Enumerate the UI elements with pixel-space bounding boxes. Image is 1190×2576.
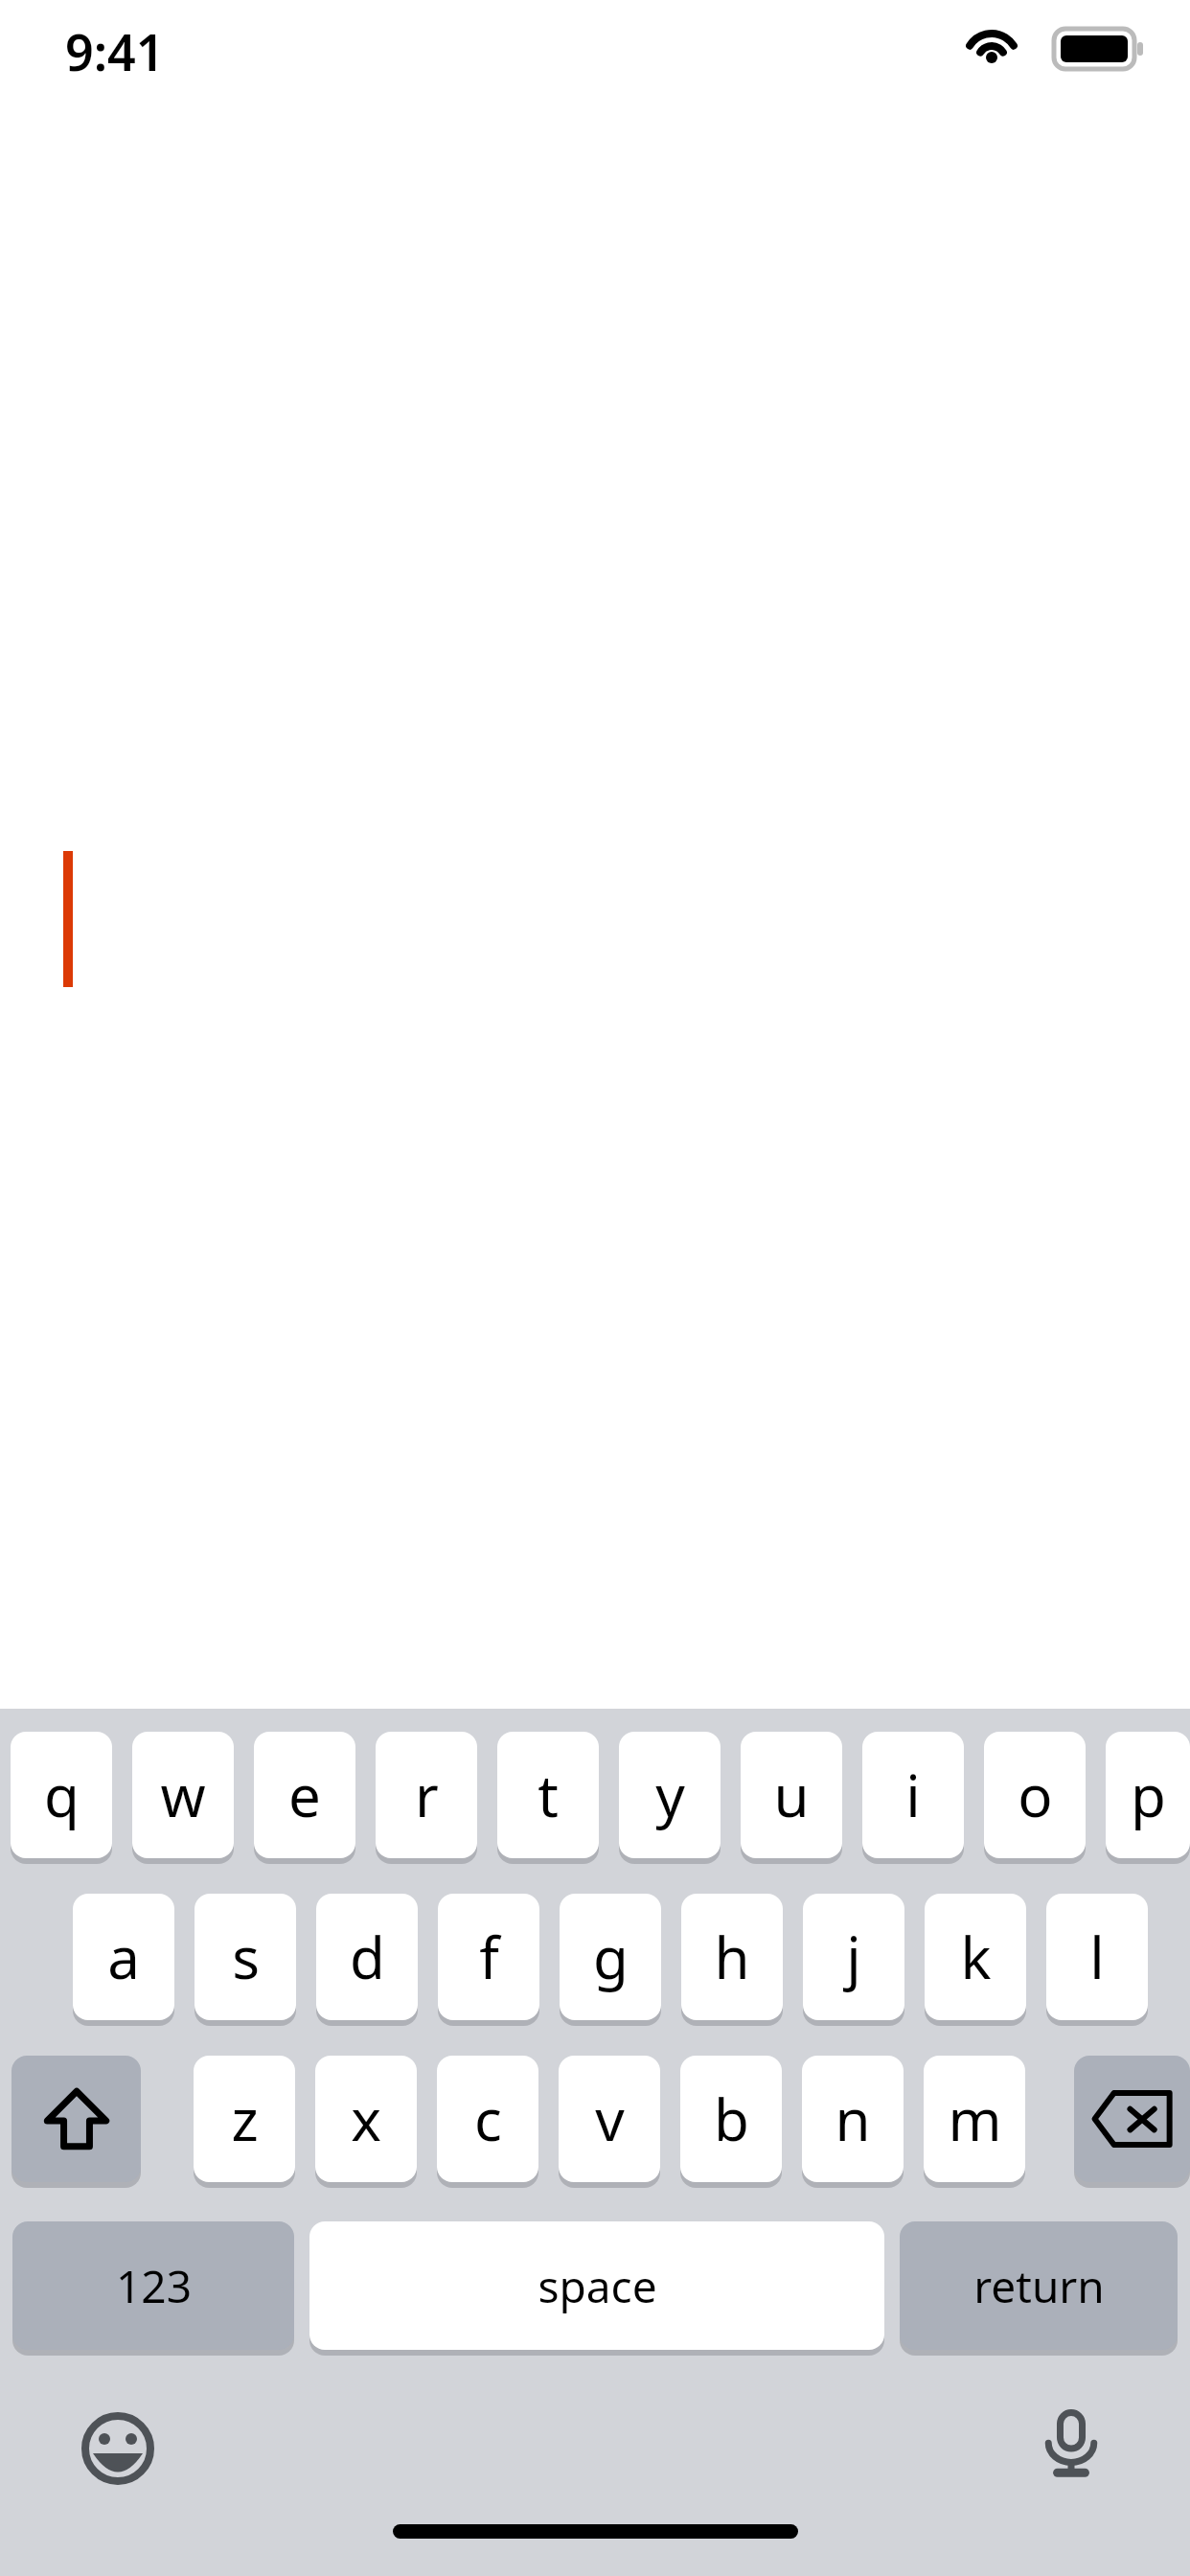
staticText: v xyxy=(595,2080,625,2158)
button[interactable]: z xyxy=(194,2056,295,2182)
staticText: h xyxy=(714,1918,750,1996)
staticText: q xyxy=(44,1756,80,1834)
button[interactable]: b xyxy=(680,2056,782,2182)
button[interactable]: k xyxy=(925,1894,1026,2020)
button[interactable]: y xyxy=(619,1732,721,1858)
button[interactable]: e xyxy=(254,1732,355,1858)
button[interactable]: a xyxy=(73,1894,174,2020)
button[interactable]: h xyxy=(681,1894,783,2020)
button[interactable]: l xyxy=(1046,1894,1148,2020)
staticText: space xyxy=(538,2256,657,2316)
button[interactable]: m xyxy=(924,2056,1025,2182)
staticText: 9:41 xyxy=(65,17,165,85)
staticText: g xyxy=(593,1918,629,1996)
staticText: o xyxy=(1018,1756,1053,1834)
staticText: c xyxy=(474,2080,502,2158)
button[interactable]: p xyxy=(1106,1732,1190,1858)
button[interactable]: f xyxy=(438,1894,539,2020)
button[interactable]: d xyxy=(316,1894,418,2020)
staticText: b xyxy=(714,2080,749,2158)
button[interactable]: w xyxy=(132,1732,234,1858)
staticText: y xyxy=(655,1756,685,1834)
staticText: s xyxy=(232,1918,260,1996)
button[interactable]: return xyxy=(900,2221,1178,2350)
staticText: z xyxy=(231,2080,259,2158)
staticText: t xyxy=(538,1756,559,1834)
staticText: f xyxy=(479,1918,499,1996)
staticText: m xyxy=(948,2080,1002,2158)
button[interactable]: i xyxy=(862,1732,964,1858)
button[interactable]: g xyxy=(560,1894,661,2020)
staticText: 123 xyxy=(116,2256,192,2316)
staticText: l xyxy=(1089,1918,1105,1996)
staticText: d xyxy=(350,1918,385,1996)
button[interactable]: u xyxy=(741,1732,842,1858)
staticText: u xyxy=(773,1756,810,1834)
button[interactable]: j xyxy=(803,1894,904,2020)
button[interactable]: space xyxy=(309,2221,884,2350)
staticText: x xyxy=(351,2080,381,2158)
staticText: r xyxy=(415,1756,439,1834)
staticText: i xyxy=(905,1756,921,1834)
button[interactable]: r xyxy=(376,1732,477,1858)
staticText: k xyxy=(960,1918,992,1996)
staticText: e xyxy=(288,1756,321,1834)
button[interactable]: 123 xyxy=(12,2221,294,2350)
staticText: w xyxy=(160,1756,206,1834)
button[interactable]: n xyxy=(802,2056,904,2182)
button[interactable]: Backspace xyxy=(1074,2056,1190,2182)
staticText: j xyxy=(846,1918,861,1996)
button[interactable]: t xyxy=(497,1732,599,1858)
staticText: p xyxy=(1131,1756,1166,1834)
button[interactable]: c xyxy=(437,2056,538,2182)
staticText: n xyxy=(835,2080,871,2158)
staticText: a xyxy=(107,1918,140,1996)
button[interactable]: Shift xyxy=(11,2056,141,2182)
button[interactable]: Emoji xyxy=(79,2409,157,2488)
button[interactable]: x xyxy=(315,2056,417,2182)
button[interactable]: s xyxy=(195,1894,296,2020)
button[interactable]: Dictation xyxy=(1033,2405,1110,2482)
staticText: return xyxy=(973,2256,1105,2316)
button[interactable]: v xyxy=(559,2056,660,2182)
button[interactable]: q xyxy=(11,1732,112,1858)
button[interactable]: o xyxy=(984,1732,1086,1858)
